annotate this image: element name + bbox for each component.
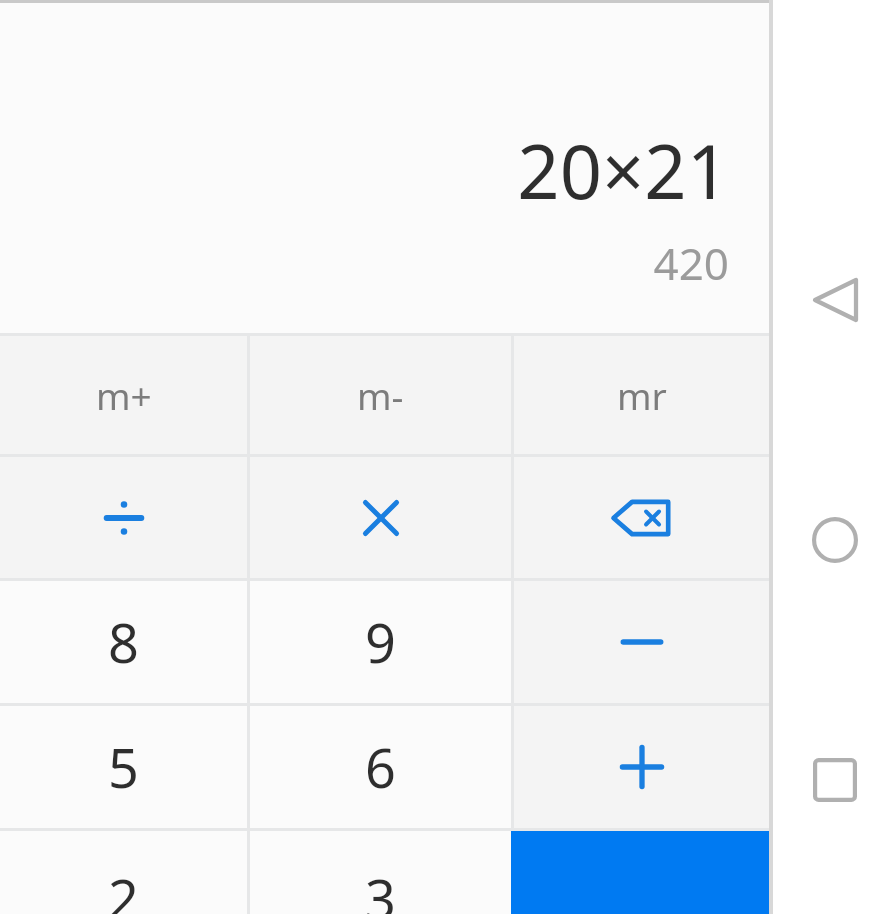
button[interactable]: 8 <box>0 581 247 703</box>
staticText: 3 <box>365 861 396 914</box>
button[interactable]: 5 <box>0 706 247 828</box>
staticText: 9 <box>365 605 396 679</box>
button[interactable]: 3 <box>250 831 511 914</box>
button[interactable]: m+ <box>0 336 247 454</box>
staticText: 2 <box>108 861 139 914</box>
staticText: m+ <box>96 370 152 420</box>
staticText: m- <box>357 370 404 420</box>
button[interactable]: 9 <box>250 581 511 703</box>
button[interactable]: 6 <box>250 706 511 828</box>
staticText: 5 <box>108 730 139 804</box>
staticText: mr <box>617 370 667 420</box>
staticText: 8 <box>108 605 139 679</box>
button[interactable]: mr <box>514 336 769 454</box>
button[interactable]: Back <box>797 262 873 338</box>
button[interactable]: Plus <box>514 706 769 828</box>
button[interactable]: Backspace <box>514 457 769 578</box>
button[interactable]: Minus <box>514 581 769 703</box>
button[interactable]: Recents <box>797 742 873 818</box>
button[interactable]: 2 <box>0 831 247 914</box>
button[interactable]: Home <box>797 502 873 578</box>
button[interactable]: Multiply <box>250 457 511 578</box>
staticText: 6 <box>365 730 396 804</box>
staticText: 420 <box>653 233 729 293</box>
button[interactable]: m- <box>250 336 511 454</box>
staticText: 20×21 <box>517 120 729 221</box>
button[interactable]: Divide <box>0 457 247 578</box>
